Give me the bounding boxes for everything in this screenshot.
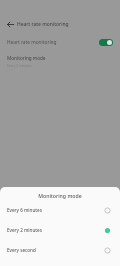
button[interactable]: Monitoring mode: [0, 52, 120, 70]
button[interactable]: Every second: [0, 240, 120, 260]
staticText: Every second: [7, 247, 36, 253]
staticText: Every 2 minutes: [7, 227, 42, 233]
staticText: Every 6 minutes: [7, 207, 42, 213]
staticText: Heart rate monitoring: [17, 21, 69, 28]
staticText: Every 2 minutes: [7, 63, 32, 67]
button[interactable]: Heart rate monitoring: [0, 33, 120, 51]
staticText: Monitoring mode: [38, 192, 82, 199]
button[interactable]: Every 6 minutes: [0, 200, 120, 220]
staticText: Monitoring mode: [7, 55, 46, 61]
button[interactable]: Every 2 minutes: [0, 220, 120, 240]
button[interactable]: Back: [0, 15, 17, 33]
staticText: Heart rate monitoring: [7, 39, 57, 46]
